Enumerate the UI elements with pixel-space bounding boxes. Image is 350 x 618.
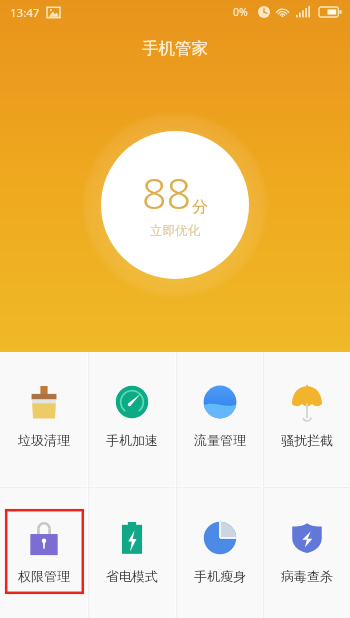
other: Alarm bbox=[258, 6, 270, 18]
staticText: 流量管理 bbox=[194, 432, 246, 448]
button[interactable]: 手机瘦身 bbox=[176, 488, 264, 618]
button[interactable]: 骚扰拦截 bbox=[264, 352, 350, 487]
staticText: 权限管理 bbox=[18, 568, 70, 584]
button[interactable]: 省电模式 bbox=[88, 488, 176, 618]
staticText: 手机瘦身 bbox=[194, 568, 246, 584]
other: Signal strength bbox=[296, 6, 310, 18]
staticText: 分 bbox=[192, 197, 208, 217]
staticText: 手机加速 bbox=[106, 432, 158, 448]
staticText: 省电模式 bbox=[106, 568, 158, 584]
other: Battery bbox=[319, 7, 341, 17]
staticText: 手机管家 bbox=[142, 38, 208, 59]
button[interactable]: 权限管理 bbox=[0, 488, 88, 618]
staticText: 0% bbox=[233, 5, 248, 19]
staticText: 88 bbox=[142, 163, 192, 222]
staticText: 13:47 bbox=[10, 5, 40, 21]
button[interactable]: 垃圾清理 bbox=[0, 352, 88, 487]
button[interactable]: 病毒查杀 bbox=[264, 488, 350, 618]
other: Wi-Fi bbox=[276, 6, 289, 19]
staticText: 立即优化 bbox=[150, 223, 200, 239]
staticText: 骚扰拦截 bbox=[281, 432, 333, 448]
staticText: 垃圾清理 bbox=[18, 432, 70, 448]
button[interactable]: 手机加速 bbox=[88, 352, 176, 487]
button[interactable]: 88 bbox=[101, 131, 249, 279]
button[interactable]: 流量管理 bbox=[176, 352, 264, 487]
staticText: 病毒查杀 bbox=[281, 568, 333, 584]
